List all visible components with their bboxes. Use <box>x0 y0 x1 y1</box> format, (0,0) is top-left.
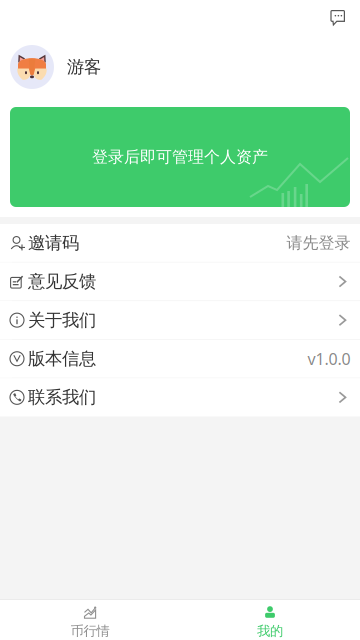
staticText: v1.0.0 <box>307 348 350 369</box>
button[interactable]: 游客 <box>0 36 360 98</box>
staticText: 请先登录 <box>286 233 350 253</box>
button[interactable]: 联系我们 <box>0 378 360 416</box>
button[interactable]: 意见反馈 <box>0 263 360 300</box>
staticText: 邀请码 <box>28 232 79 254</box>
staticText: 版本信息 <box>28 348 96 369</box>
staticText: 币行情 <box>70 623 109 639</box>
staticText: 我的 <box>257 623 283 639</box>
staticText: 联系我们 <box>28 387 96 408</box>
button[interactable]: 我的 <box>180 600 360 640</box>
button[interactable]: Messages <box>330 0 360 36</box>
button[interactable]: 关于我们 <box>0 301 360 339</box>
button[interactable]: 登录后即可管理个人资产 <box>0 98 360 217</box>
button[interactable]: 版本信息 <box>0 340 360 378</box>
button[interactable]: 币行情 <box>0 600 180 640</box>
staticText: 游客 <box>67 56 101 78</box>
button[interactable]: 邀请码 <box>0 224 360 262</box>
staticText: 登录后即可管理个人资产 <box>92 147 268 167</box>
staticText: 关于我们 <box>28 309 96 331</box>
staticText: 意见反馈 <box>28 271 96 292</box>
